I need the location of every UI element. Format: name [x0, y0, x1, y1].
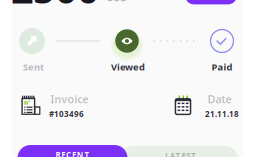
- staticText: Invoice: [50, 92, 88, 106]
- staticText: Sent: [23, 61, 44, 73]
- staticText: 21.11.18: [205, 108, 239, 119]
- staticText: Date: [207, 92, 231, 106]
- button[interactable]: RECENT: [17, 145, 127, 157]
- button[interactable]: Paid: [210, 29, 234, 53]
- staticText: LATEST: [165, 151, 196, 157]
- staticText: RECENT: [55, 150, 89, 157]
- staticText: £500: [11, 0, 99, 14]
- button[interactable]: LATEST: [119, 146, 238, 157]
- button[interactable]: Action: [185, 0, 237, 4]
- button[interactable]: Viewed: [114, 28, 140, 54]
- staticText: USD: [106, 0, 128, 4]
- staticText: Paid: [211, 61, 232, 73]
- staticText: #103496: [49, 108, 84, 119]
- button[interactable]: Sent: [19, 28, 45, 54]
- staticText: Viewed: [111, 61, 145, 73]
